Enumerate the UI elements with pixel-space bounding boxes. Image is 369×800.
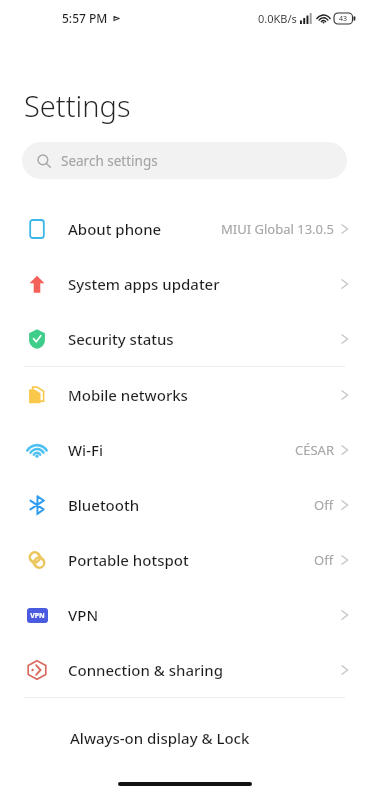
staticText: System apps updater	[68, 274, 220, 294]
button[interactable]: Portable hotspot	[0, 532, 369, 587]
staticText: MIUI Global 13.0.5	[221, 220, 334, 238]
staticText: 0.0KB/s	[258, 11, 297, 26]
staticText: CÉSAR	[295, 441, 334, 459]
staticText: Off	[314, 551, 334, 569]
staticText: Bluetooth	[68, 495, 140, 515]
button[interactable]: About phone	[0, 201, 369, 256]
staticText: 5:57 PM	[62, 10, 108, 26]
staticText: About phone	[68, 219, 162, 239]
button[interactable]: Bluetooth	[0, 477, 369, 532]
button[interactable]: Mobile networks	[0, 367, 369, 422]
button[interactable]: Wi-Fi	[0, 422, 369, 477]
staticText: Portable hotspot	[68, 550, 189, 570]
staticText: VPN	[68, 605, 99, 625]
staticText: Wi-Fi	[68, 440, 103, 460]
staticText: Always-on display & Lock	[70, 728, 250, 748]
button[interactable]: Connection & sharing	[0, 642, 369, 697]
staticText: Connection & sharing	[68, 660, 224, 680]
staticText: 43	[339, 14, 348, 24]
button[interactable]: Security status	[0, 311, 369, 366]
staticText: VPN	[30, 611, 45, 621]
button[interactable]: System apps updater	[0, 256, 369, 311]
staticText: Security status	[68, 329, 174, 349]
staticText: Mobile networks	[68, 385, 188, 405]
button[interactable]: Search settings	[22, 142, 347, 179]
staticText: Off	[314, 496, 334, 514]
button[interactable]: VPN	[0, 587, 369, 642]
staticText: Search settings	[61, 152, 158, 170]
staticText: Settings	[24, 86, 131, 125]
